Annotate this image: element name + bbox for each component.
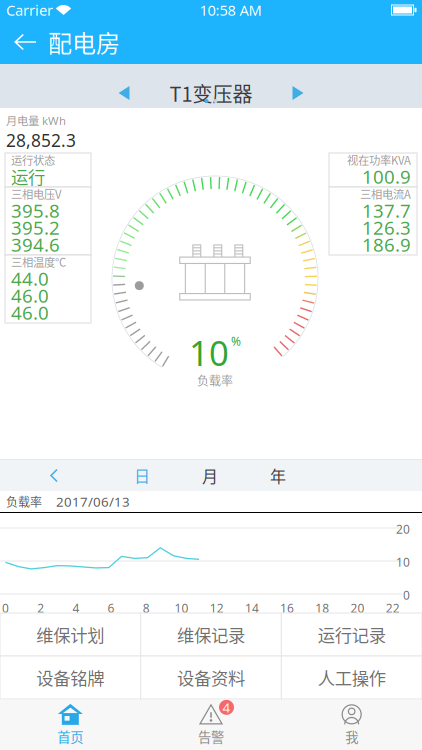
- staticText: 6: [108, 600, 115, 616]
- staticText: 负载率: [6, 493, 42, 510]
- staticText: 日: [134, 464, 150, 487]
- staticText: 运行记录: [318, 622, 386, 647]
- staticText: 186.9: [362, 232, 411, 257]
- button[interactable]: 日: [108, 460, 176, 491]
- staticText: 月: [202, 464, 218, 487]
- staticText: 运行状态: [11, 152, 55, 168]
- button[interactable]: 设备资料: [141, 656, 281, 699]
- button[interactable]: 设备铭牌: [0, 656, 141, 699]
- staticText: 18: [315, 600, 329, 616]
- staticText: 设备铭牌: [36, 665, 104, 690]
- button[interactable]: 年: [244, 460, 312, 491]
- staticText: 三相电流A: [360, 186, 411, 202]
- staticText: T1变压器: [169, 78, 252, 107]
- staticText: 三相电压V: [11, 186, 62, 202]
- staticText: 我: [345, 727, 358, 746]
- staticText: 2: [37, 600, 44, 616]
- staticText: 46.0: [11, 300, 49, 325]
- staticText: 395.2: [11, 215, 60, 240]
- staticText: 维保记录: [177, 622, 245, 647]
- staticText: 4: [72, 600, 79, 616]
- staticText: 46.0: [11, 283, 49, 308]
- button[interactable]: 月: [176, 460, 244, 491]
- staticText: 运行: [11, 164, 45, 189]
- staticText: 100.9: [362, 164, 411, 189]
- staticText: 4: [222, 698, 230, 716]
- staticText: 人工操作: [318, 665, 386, 690]
- staticText: 设备资料: [177, 665, 245, 690]
- button[interactable]: 首页: [0, 700, 141, 750]
- button[interactable]: Previous device: [104, 78, 143, 108]
- button[interactable]: 维保记录: [141, 613, 281, 656]
- staticText: 视在功率KVA: [347, 152, 411, 168]
- staticText: kWh: [42, 113, 66, 128]
- button[interactable]: 人工操作: [281, 656, 422, 699]
- staticText: 8: [143, 600, 150, 616]
- button[interactable]: Back: [0, 20, 48, 63]
- staticText: 三相温度°C: [11, 254, 66, 270]
- staticText: 10:58 AM: [199, 0, 261, 20]
- button[interactable]: Next device: [278, 78, 317, 108]
- staticText: 年: [270, 464, 286, 487]
- button[interactable]: 我: [281, 700, 422, 750]
- staticText: 配电房: [48, 25, 120, 59]
- button[interactable]: 维保计划: [0, 613, 141, 656]
- staticText: 10: [174, 600, 188, 616]
- staticText: 首页: [57, 727, 83, 746]
- staticText: 告警: [198, 727, 224, 746]
- staticText: 0: [403, 587, 410, 603]
- staticText: 395.8: [11, 198, 60, 223]
- staticText: 负载率: [197, 372, 233, 389]
- staticText: 126.3: [362, 215, 411, 240]
- staticText: 12: [210, 600, 224, 616]
- staticText: Carrier: [6, 0, 53, 20]
- staticText: 137.7: [362, 198, 411, 223]
- staticText: 2017/06/13: [56, 492, 130, 511]
- staticText: 维保计划: [36, 622, 104, 647]
- button[interactable]: 运行记录: [281, 613, 422, 656]
- staticText: 28,852.3: [6, 128, 76, 152]
- staticText: 10: [189, 329, 229, 376]
- staticText: 16: [280, 600, 294, 616]
- staticText: %: [231, 333, 241, 349]
- staticText: 44.0: [11, 266, 49, 291]
- staticText: 14: [245, 600, 259, 616]
- button[interactable]: 4: [141, 700, 281, 750]
- staticText: 20: [350, 600, 364, 616]
- staticText: 22: [386, 600, 400, 616]
- staticText: 月电量: [6, 112, 39, 128]
- staticText: 20: [396, 521, 410, 537]
- staticText: 0: [2, 600, 9, 616]
- staticText: 394.6: [11, 232, 60, 257]
- button[interactable]: Previous period: [0, 460, 108, 491]
- staticText: 10: [396, 554, 410, 570]
